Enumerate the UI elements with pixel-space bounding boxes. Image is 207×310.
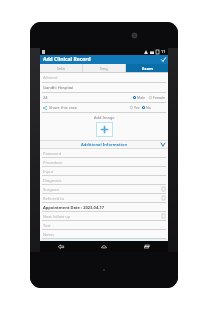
staticText: Yes	[134, 105, 140, 110]
staticText: Add Clinical Record	[43, 56, 91, 63]
staticText: Appointment Date : 2023-04-17	[43, 205, 105, 210]
staticText: Img	[100, 66, 108, 71]
button[interactable]: No	[142, 105, 151, 110]
button[interactable]: Appointment Date : 2023-04-17	[40, 203, 168, 212]
staticText: Additional Information	[81, 142, 127, 147]
button[interactable]: Diagnosis	[40, 176, 168, 185]
staticText: Diagnosis	[43, 178, 62, 183]
button[interactable]: Password	[40, 149, 168, 158]
staticText: Gandhi Hospital	[43, 85, 74, 90]
staticText: Exam	[142, 66, 153, 71]
staticText: 11	[161, 49, 166, 54]
staticText: 24	[43, 95, 133, 100]
button[interactable]: Gandhi Hospital	[40, 83, 168, 93]
staticText: Female	[153, 95, 165, 100]
button[interactable]: Exam	[126, 64, 168, 72]
staticText: Next follow up	[43, 214, 162, 219]
button[interactable]: Test	[40, 221, 168, 230]
staticText: Info	[57, 66, 65, 71]
button[interactable]: Home	[82, 241, 125, 252]
button[interactable]: Save record	[159, 55, 168, 64]
button[interactable]: Male	[133, 95, 146, 100]
button[interactable]: Procedure	[40, 158, 168, 167]
staticText: Surgeon	[43, 187, 162, 192]
button[interactable]: Add image	[96, 122, 113, 137]
staticText: Input	[43, 169, 54, 174]
button[interactable]: Back	[40, 241, 82, 252]
button[interactable]: Notes	[40, 230, 168, 239]
button[interactable]: Additional Information	[40, 140, 168, 149]
staticText: Password	[43, 151, 62, 156]
button[interactable]: Next follow up	[40, 212, 168, 221]
staticText: Add Image	[94, 115, 115, 120]
staticText: Male	[137, 95, 146, 100]
staticText: Procedure	[43, 160, 63, 165]
staticText: Notes	[43, 232, 55, 237]
button[interactable]: Female	[149, 95, 165, 100]
button[interactable]: Input	[40, 167, 168, 176]
button[interactable]: Ailment	[40, 73, 168, 83]
staticText: Share this case	[49, 105, 130, 110]
button[interactable]: Recent apps	[125, 241, 168, 252]
staticText: Test	[43, 223, 51, 228]
button[interactable]: Info	[40, 64, 82, 72]
staticText: Ailment	[43, 75, 58, 80]
button[interactable]: Referred to	[40, 194, 168, 203]
staticText: Referred to	[43, 196, 162, 201]
button[interactable]: Yes	[130, 105, 140, 110]
button[interactable]: Surgeon	[40, 185, 168, 194]
button[interactable]: Img	[83, 64, 125, 72]
staticText: No	[146, 105, 151, 110]
